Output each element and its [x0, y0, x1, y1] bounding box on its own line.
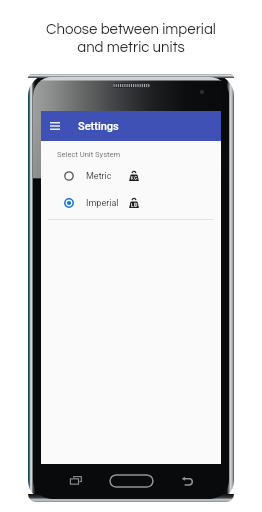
button[interactable]: Home [109, 474, 154, 488]
button[interactable]: Metric [41, 163, 221, 188]
staticText: Settings [78, 120, 119, 133]
button[interactable]: Imperial [41, 190, 221, 215]
button[interactable]: Open navigation menu [50, 119, 60, 133]
staticText: Imperial [86, 198, 119, 209]
staticText: Metric [86, 171, 112, 182]
staticText: Choose between imperial and metric units [46, 22, 216, 55]
button[interactable]: Back [180, 474, 194, 488]
button[interactable]: Recent apps [69, 475, 83, 486]
staticText: Select Unit System [57, 150, 121, 159]
button[interactable]: Open navigation menu [41, 111, 221, 141]
